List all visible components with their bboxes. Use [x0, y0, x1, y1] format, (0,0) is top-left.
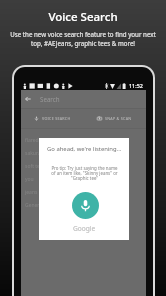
- staticText: Pro tip: Try just saying the name of an …: [51, 165, 118, 182]
- staticText: flared jeans: [25, 137, 53, 144]
- staticText: Go ahead, we're listening...: [47, 145, 122, 153]
- staticText: sakura: [25, 150, 41, 157]
- button[interactable]: soft tee: [21, 160, 146, 173]
- staticText: Search: [40, 95, 60, 103]
- button[interactable]: sakura: [21, 147, 146, 160]
- staticText: you: [25, 176, 34, 183]
- button[interactable]: flared jeans: [21, 134, 146, 147]
- button[interactable]: you: [21, 173, 146, 186]
- staticText: 11:52: [129, 82, 143, 89]
- button[interactable]: jeans: [21, 186, 146, 199]
- staticText: SNAP & SCAN: [105, 116, 132, 121]
- button[interactable]: General: [21, 199, 146, 212]
- staticText: Voice Search: [48, 9, 118, 25]
- staticText: General: [25, 202, 44, 209]
- staticText: Use the new voice search feature to find…: [10, 30, 156, 48]
- button[interactable]: SNAP & SCAN: [83, 108, 146, 129]
- staticText: Google: [73, 224, 96, 233]
- staticText: soft tee: [25, 163, 43, 170]
- staticText: VOICE SEARCH: [42, 116, 71, 121]
- button[interactable]: Start voice search: [72, 192, 99, 219]
- staticText: jeans: [25, 189, 38, 196]
- button[interactable]: VOICE SEARCH: [21, 108, 83, 129]
- button[interactable]: Back: [23, 94, 33, 104]
